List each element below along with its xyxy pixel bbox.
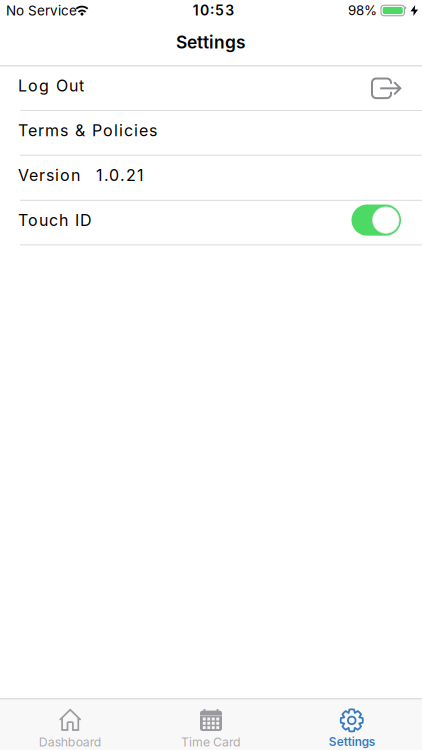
staticText: 1.0.21 — [96, 166, 144, 185]
staticText: Log Out — [18, 76, 84, 95]
button[interactable]: Terms & Policies — [0, 111, 422, 155]
staticText: Version — [18, 166, 80, 185]
staticText: 98% — [348, 2, 377, 18]
staticText: Time Card — [181, 735, 241, 749]
staticText: Terms & Policies — [18, 121, 157, 140]
staticText: Settings — [329, 735, 375, 749]
staticText: Settings — [176, 32, 246, 53]
button[interactable]: Dashboard — [0, 699, 140, 750]
staticText: 10:53 — [193, 2, 234, 19]
staticText: Touch ID — [18, 210, 92, 230]
button[interactable]: Touch ID — [351, 204, 401, 241]
button[interactable]: Settings — [281, 699, 422, 750]
button[interactable]: Log Out — [0, 66, 422, 110]
staticText: No Service — [6, 2, 77, 19]
button[interactable]: Time Card — [140, 699, 281, 750]
staticText: Dashboard — [39, 735, 102, 749]
